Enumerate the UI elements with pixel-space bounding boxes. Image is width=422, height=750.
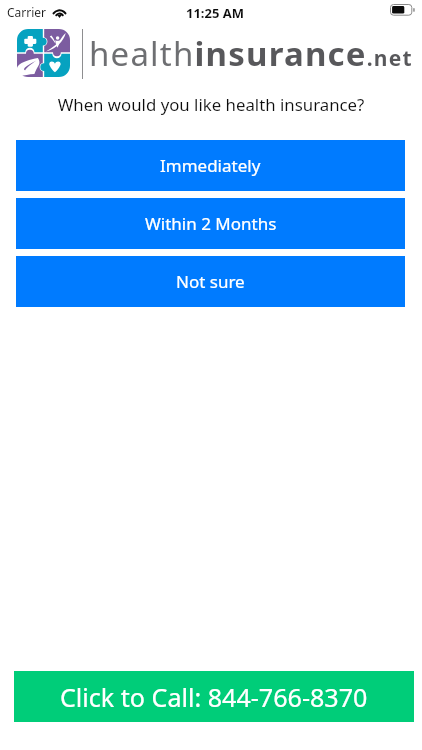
staticText: Within 2 Months (145, 212, 277, 235)
button[interactable]: Not sure (16, 256, 405, 307)
staticText: 11:25 AM (186, 4, 245, 22)
button[interactable]: Within 2 Months (16, 198, 405, 249)
staticText: healthinsurance.net (89, 31, 413, 76)
button[interactable]: Click to Call: 844-766-8370 (14, 671, 414, 722)
staticText: Carrier (7, 4, 47, 20)
staticText: Not sure (176, 270, 245, 293)
staticText: Click to Call: 844-766-8370 (60, 680, 368, 714)
staticText: Immediately (160, 154, 261, 177)
staticText: When would you like health insurance? (0, 93, 422, 116)
button[interactable]: Immediately (16, 140, 405, 191)
